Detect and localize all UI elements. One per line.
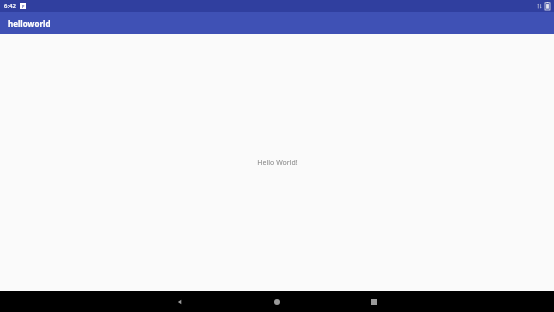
button[interactable]: Home — [267, 292, 287, 312]
staticText: helloworld — [8, 18, 51, 29]
staticText: Hello World! — [257, 158, 298, 168]
button[interactable]: Back — [170, 292, 190, 312]
button[interactable]: Recent apps — [364, 292, 384, 312]
staticText: 6:42 — [4, 2, 16, 10]
staticText: P — [22, 4, 25, 9]
